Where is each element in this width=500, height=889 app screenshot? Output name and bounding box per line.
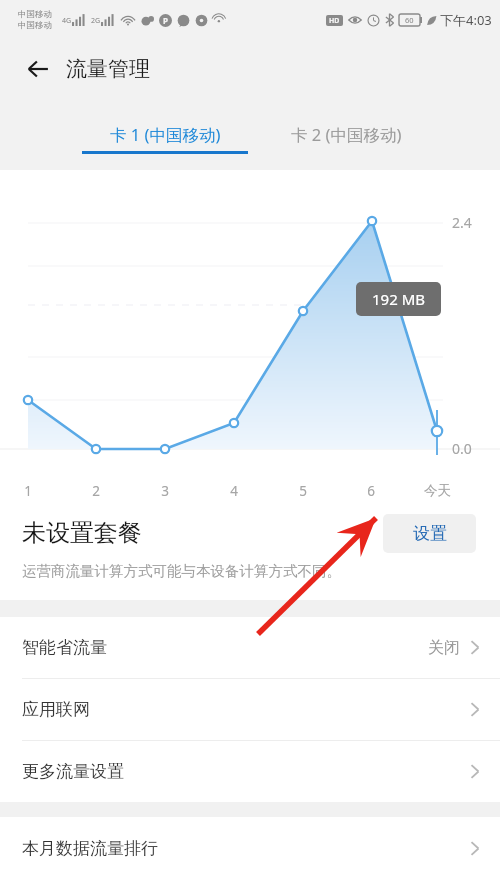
staticText: 2G bbox=[91, 16, 101, 26]
staticText: 2.4 bbox=[452, 213, 472, 232]
staticText: 0.0 bbox=[452, 439, 472, 458]
button[interactable]: Back bbox=[16, 47, 60, 91]
staticText: 卡 2 (中国移动) bbox=[291, 123, 402, 146]
staticText: 运营商流量计算方式可能与本设备计算方式不同。 bbox=[22, 562, 341, 580]
staticText: 2 bbox=[92, 482, 100, 500]
staticText: 关闭 bbox=[428, 638, 460, 658]
staticText: 6 bbox=[367, 482, 375, 500]
button[interactable]: 卡 2 (中国移动) bbox=[258, 117, 434, 151]
staticText: 5 bbox=[299, 482, 307, 500]
staticText: 流量管理 bbox=[66, 56, 150, 82]
staticText: 设置 bbox=[413, 523, 447, 544]
staticText: HD bbox=[329, 16, 340, 26]
button[interactable]: 卡 1 (中国移动) bbox=[72, 117, 258, 151]
staticText: 1 bbox=[24, 482, 32, 500]
button[interactable]: 设置 bbox=[383, 514, 476, 553]
staticText: P bbox=[163, 15, 168, 26]
staticText: 4G bbox=[62, 16, 72, 26]
staticText: 192 MB bbox=[372, 289, 425, 309]
button[interactable]: 智能省流量 bbox=[0, 617, 500, 678]
staticText: 中国移动 bbox=[18, 20, 52, 31]
staticText: 3 bbox=[161, 482, 169, 500]
button[interactable]: 应用联网 bbox=[0, 679, 500, 740]
button[interactable]: 本月数据流量排行 bbox=[0, 817, 500, 879]
staticText: 智能省流量 bbox=[22, 637, 107, 658]
staticText: 未设置套餐 bbox=[22, 518, 142, 548]
staticText: 卡 1 (中国移动) bbox=[110, 123, 221, 146]
staticText: 更多流量设置 bbox=[22, 761, 124, 782]
staticText: 本月数据流量排行 bbox=[22, 838, 158, 859]
button[interactable]: 更多流量设置 bbox=[0, 741, 500, 802]
staticText: 60 bbox=[405, 15, 414, 25]
staticText: 4 bbox=[230, 482, 238, 500]
staticText: 应用联网 bbox=[22, 699, 90, 720]
staticText: 下午4:03 bbox=[440, 11, 492, 29]
staticText: 中国移动 bbox=[18, 9, 52, 20]
staticText: 今天 bbox=[424, 482, 451, 499]
